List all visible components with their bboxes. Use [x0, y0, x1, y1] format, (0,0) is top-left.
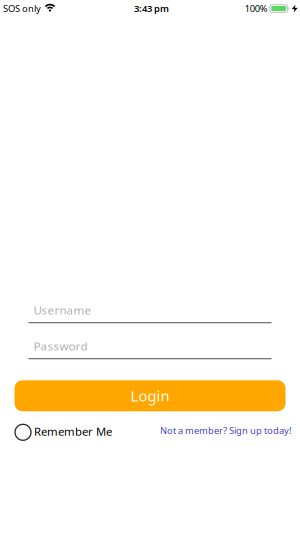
staticText: Not a member? Sign up today!: [160, 424, 292, 436]
staticText: Password: [33, 338, 87, 354]
staticText: SOS only: [3, 2, 41, 15]
staticText: Username: [33, 302, 91, 318]
staticText: 3:43 pm: [134, 2, 169, 15]
button[interactable]: Remember Me: [15, 424, 112, 440]
staticText: Remember Me: [34, 424, 112, 439]
staticText: 100%: [245, 2, 268, 15]
button[interactable]: Not a member? Sign up today!: [160, 426, 292, 438]
button[interactable]: Login: [14, 380, 285, 411]
button[interactable]: Password: [28, 338, 271, 359]
button[interactable]: Username: [28, 302, 271, 323]
staticText: Login: [130, 386, 169, 406]
